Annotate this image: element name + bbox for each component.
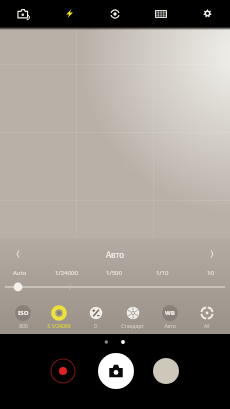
staticText: Авто bbox=[164, 323, 176, 330]
staticText: 1/500 bbox=[106, 269, 122, 277]
staticText: AF bbox=[204, 323, 210, 330]
button[interactable]: Next mode bbox=[194, 245, 230, 263]
staticText: 0 bbox=[94, 323, 97, 330]
button[interactable]: Gallery bbox=[153, 358, 179, 384]
button[interactable]: S bbox=[41, 305, 77, 330]
staticText: S 1/24000 bbox=[47, 323, 71, 330]
staticText: 1/10 bbox=[156, 269, 169, 277]
staticText: 1/24000 bbox=[55, 269, 78, 277]
button[interactable]: Metering bbox=[92, 0, 138, 27]
button[interactable]: Flash bbox=[46, 0, 92, 27]
staticText: Авто bbox=[106, 249, 124, 260]
button[interactable]: WB bbox=[151, 305, 188, 330]
button[interactable]: ST bbox=[114, 305, 151, 330]
staticText: WB bbox=[165, 309, 175, 317]
staticText: 800 bbox=[19, 323, 28, 330]
staticText: ISO bbox=[18, 309, 29, 317]
button[interactable]: Settings bbox=[184, 0, 230, 27]
staticText: 10 bbox=[207, 269, 214, 277]
button[interactable]: Take photo bbox=[98, 353, 134, 389]
button[interactable]: Record video bbox=[48, 356, 78, 386]
button[interactable]: Switch camera bbox=[0, 0, 46, 27]
button[interactable]: Grid bbox=[138, 0, 184, 27]
staticText: Auto bbox=[13, 269, 27, 277]
button[interactable]: EV bbox=[77, 305, 114, 330]
button[interactable]: Previous mode bbox=[0, 245, 36, 263]
button[interactable]: AF bbox=[188, 305, 225, 330]
staticText: Стандарт bbox=[121, 323, 144, 330]
button[interactable]: ISO bbox=[5, 305, 41, 330]
